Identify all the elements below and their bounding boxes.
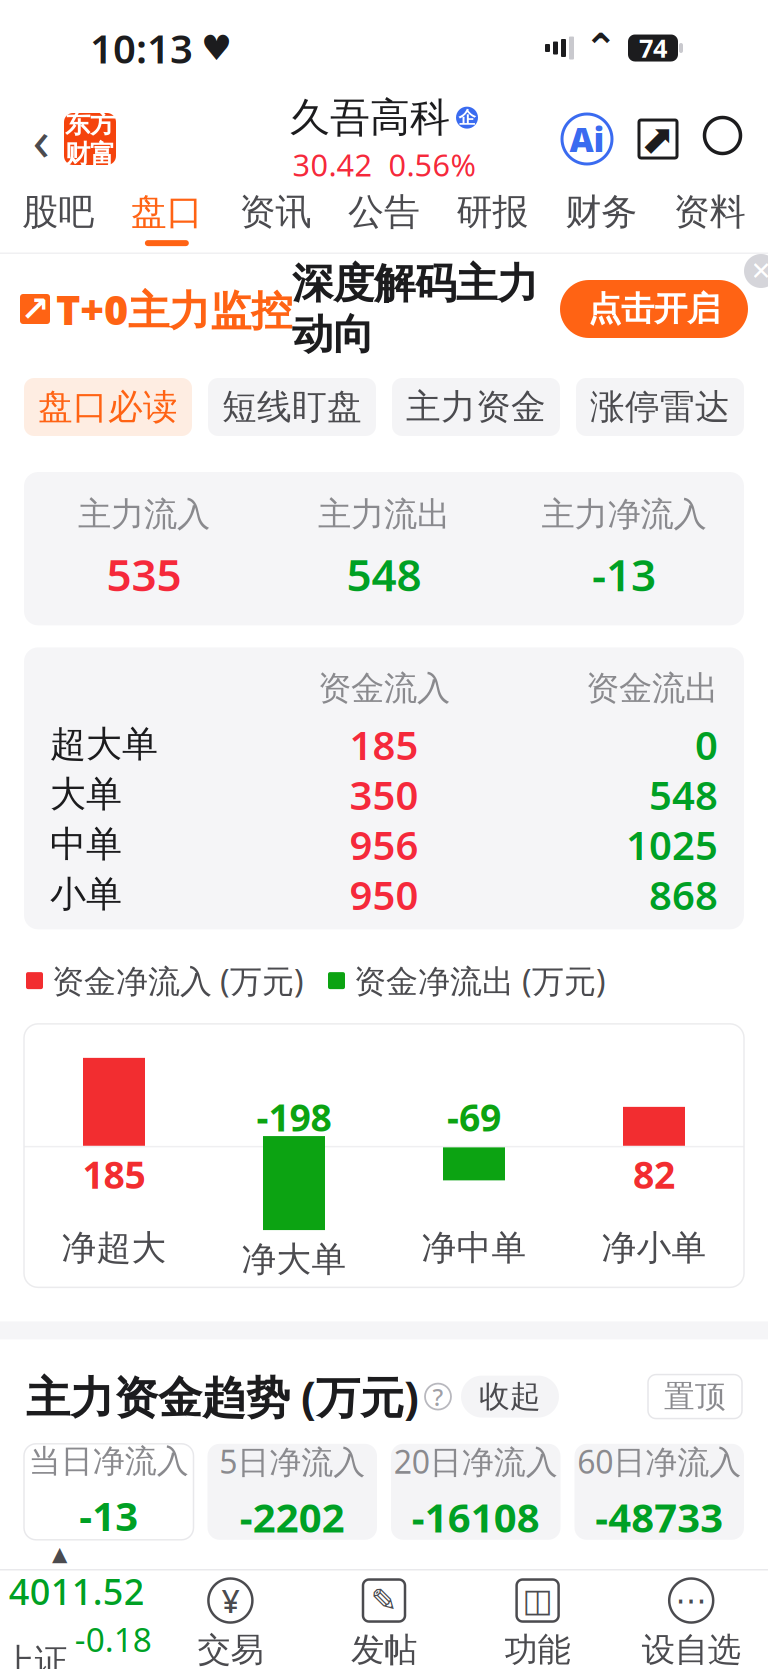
button[interactable]: 置顶	[648, 1375, 742, 1419]
staticText: -198	[256, 1092, 331, 1142]
staticText: 点击开启	[588, 288, 720, 329]
staticText: ↗	[20, 289, 49, 329]
staticText: 主力净流入 (万元)	[55, 1570, 307, 1612]
staticText: ‹	[32, 102, 49, 176]
staticText: 10:13	[90, 21, 193, 74]
staticText: 公告	[348, 190, 420, 234]
button[interactable]: 点击开启	[560, 280, 748, 338]
staticText: ✎	[370, 1582, 397, 1619]
staticText: 净小单	[601, 1227, 706, 1269]
staticText: 交易	[197, 1629, 263, 1669]
button[interactable]: 60日净流入	[574, 1444, 744, 1540]
button[interactable]: 返回	[18, 109, 64, 169]
button[interactable]: 关闭	[744, 254, 768, 288]
staticText: 财务	[565, 190, 637, 234]
staticText: 资金流出	[586, 668, 718, 709]
staticText: 中单	[50, 822, 122, 866]
button[interactable]: 搜索	[702, 115, 750, 163]
staticText: -2202	[240, 1490, 345, 1544]
staticText: 资金净流出 (万元)	[354, 959, 606, 1002]
staticText: 主力资金趋势 (万元)	[26, 1367, 419, 1426]
staticText: 主力净流入	[541, 494, 706, 535]
button[interactable]: 东方财富	[64, 108, 116, 170]
button[interactable]: AI 助手	[562, 114, 612, 164]
staticText: ⋯	[675, 1582, 707, 1619]
staticText: 收起	[479, 1378, 541, 1415]
staticText: 盘口	[131, 190, 203, 234]
staticText: 净大单	[241, 1238, 346, 1281]
staticText: -13	[592, 545, 656, 603]
staticText: 5日净流入	[219, 1440, 365, 1482]
staticText: 950	[349, 868, 418, 921]
staticText: 净超大	[61, 1227, 166, 1269]
staticText: 置顶	[664, 1378, 726, 1415]
staticText: ¥	[221, 1579, 239, 1622]
staticText: 上证	[2, 1641, 68, 1669]
button[interactable]: 盘口	[113, 182, 221, 254]
staticText: 深度解码主力动向	[292, 258, 538, 360]
staticText: Ai	[569, 117, 604, 161]
staticText: 资金净流入 (万元)	[52, 959, 304, 1002]
button[interactable]: 资料	[655, 182, 764, 254]
staticText: 185	[82, 1149, 145, 1199]
staticText: 20日净流入	[394, 1440, 558, 1482]
button[interactable]: 研报	[438, 182, 547, 254]
button[interactable]: ▲	[0, 1542, 154, 1669]
staticText: 548	[649, 768, 718, 821]
staticText: 350	[349, 768, 418, 821]
staticText: 久吾高科	[290, 93, 450, 142]
staticText: 72	[682, 1655, 716, 1669]
button[interactable]: 财务	[547, 182, 655, 254]
staticText: 868	[649, 868, 718, 921]
staticText: -16108	[412, 1490, 540, 1544]
button[interactable]: 主力资金	[392, 378, 560, 436]
staticText: 大单	[50, 772, 122, 816]
button[interactable]: ⋯	[614, 1577, 768, 1669]
staticText: 主力流出	[318, 494, 450, 535]
button[interactable]: 资讯	[221, 182, 330, 254]
staticText: 185	[349, 718, 418, 771]
staticText: -13	[79, 1489, 138, 1542]
button[interactable]: 收起	[461, 1376, 559, 1418]
button[interactable]: 公告	[330, 182, 438, 254]
staticText: 股价 (元)	[362, 1570, 486, 1612]
staticText: 短线盯盘	[222, 386, 362, 428]
button[interactable]: 5日净流入	[207, 1444, 377, 1540]
button[interactable]: 股吧	[4, 182, 113, 254]
button[interactable]: ¥	[154, 1577, 307, 1669]
staticText: ✕	[750, 257, 768, 285]
button[interactable]: 盘口必读	[24, 378, 192, 436]
staticText: 82	[633, 1149, 675, 1199]
staticText: 3048	[52, 1655, 120, 1669]
button[interactable]: 涨停雷达	[576, 378, 744, 436]
button[interactable]: ◫	[461, 1577, 614, 1669]
staticText: 548	[346, 545, 421, 603]
staticText: 盘口必读	[38, 386, 178, 428]
staticText: 当日净流入	[29, 1442, 189, 1481]
staticText: 主力流入	[78, 494, 210, 535]
staticText: 资金流入	[318, 668, 450, 709]
staticText: -48733	[595, 1490, 723, 1544]
button[interactable]: 当日净流入	[24, 1444, 193, 1540]
staticText: 设自选	[642, 1629, 741, 1669]
staticText: 净中单	[421, 1227, 526, 1269]
button[interactable]: 短线盯盘	[208, 378, 376, 436]
staticText: 财富	[65, 138, 115, 170]
staticText: 股吧	[22, 190, 94, 234]
button[interactable]: 20日净流入	[391, 1444, 560, 1540]
staticText: 956	[349, 818, 418, 871]
button[interactable]: 说明	[419, 1378, 457, 1416]
staticText: 535	[106, 545, 181, 603]
staticText: 资讯	[239, 190, 311, 234]
staticText: 小单	[50, 872, 122, 916]
staticText: 企	[458, 107, 475, 128]
button[interactable]: 分享	[634, 115, 682, 163]
staticText: ▲	[52, 1542, 67, 1565]
staticText: ◫	[523, 1582, 553, 1619]
staticText: 东方	[65, 108, 115, 139]
staticText: ⌃	[584, 25, 618, 71]
button[interactable]: ✎	[307, 1577, 461, 1669]
staticText: 0	[695, 718, 718, 771]
staticText: 30.42 0.56%	[292, 144, 475, 185]
staticText: 研报	[457, 190, 529, 234]
